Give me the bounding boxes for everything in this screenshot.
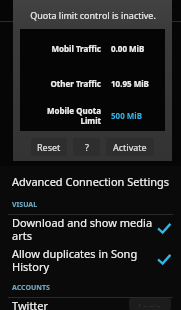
button[interactable]: Activate — [106, 138, 154, 156]
other: Enabled — [157, 253, 171, 267]
staticText: ACCOUNTS — [12, 283, 50, 293]
staticText: 500 MiB — [111, 110, 143, 121]
staticText: Allow duplicates in Song History — [12, 246, 157, 274]
staticText: ? — [85, 141, 89, 153]
button[interactable]: Twitter — [0, 298, 181, 310]
staticText: 0.00 MiB — [111, 43, 145, 54]
staticText: Mobil Traffic — [51, 43, 101, 54]
staticText: Login — [138, 301, 162, 307]
button[interactable]: ? — [73, 138, 100, 156]
other: Enabled — [157, 222, 171, 236]
staticText: Twitter — [12, 298, 49, 310]
button[interactable]: Advanced Connection Settings — [0, 168, 181, 194]
staticText: Other Traffic — [50, 78, 101, 89]
staticText: VISUAL — [12, 200, 38, 210]
button[interactable]: Download and show media arts — [0, 215, 181, 243]
staticText: Reset — [37, 141, 61, 153]
staticText: Mobile Quota Limit — [46, 105, 101, 126]
staticText: 10.95 MiB — [111, 78, 149, 89]
staticText: Download and show media arts — [12, 215, 157, 243]
button[interactable]: Reset — [31, 138, 67, 156]
staticText: Quota limit control is inactive. — [30, 9, 156, 21]
button[interactable]: Allow duplicates in Song History — [0, 243, 181, 277]
staticText: Activate — [113, 141, 147, 153]
staticText: Advanced Connection Settings — [12, 174, 170, 189]
